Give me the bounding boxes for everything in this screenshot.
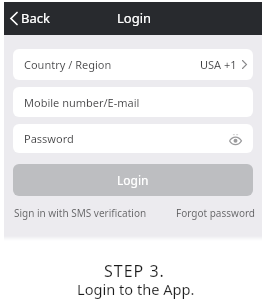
button[interactable]: Show password: [227, 131, 243, 147]
staticText: STEP 3.: [104, 260, 165, 282]
staticText: Password: [24, 131, 74, 146]
staticText: Login to the App.: [77, 279, 195, 299]
button[interactable]: Sign in with SMS verification: [14, 202, 147, 224]
staticText: Forgot password: [176, 206, 256, 220]
button[interactable]: Forgot password: [176, 202, 256, 224]
staticText: Login: [117, 172, 149, 188]
staticText: Sign in with SMS verification: [14, 206, 147, 220]
staticText: Mobile number/E-mail: [24, 95, 140, 110]
button[interactable]: Back: [4, 9, 56, 27]
staticText: Back: [21, 9, 50, 27]
staticText: Country / Region: [24, 57, 112, 72]
button[interactable]: Login: [13, 164, 253, 196]
staticText: Login: [117, 9, 152, 27]
button[interactable]: Country / Region: [13, 49, 253, 80]
button[interactable]: Password: [13, 124, 253, 153]
staticText: USA +1: [200, 57, 237, 72]
button[interactable]: Mobile number/E-mail: [13, 87, 253, 117]
